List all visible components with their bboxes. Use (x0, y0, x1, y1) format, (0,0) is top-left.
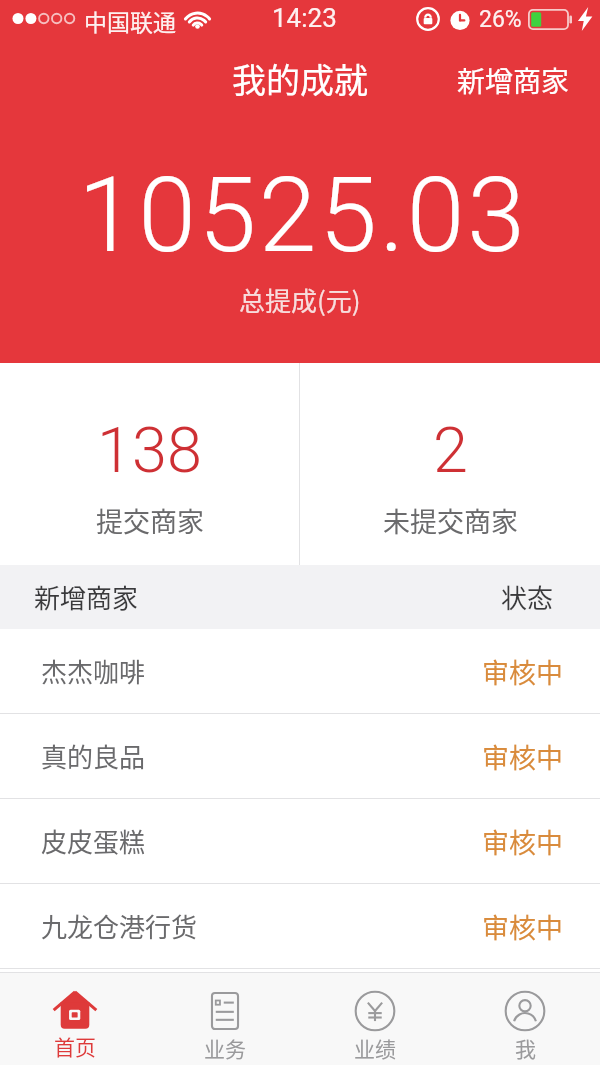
staticText: 提交商家 (96, 501, 204, 540)
staticText: 新增商家 (34, 578, 139, 616)
staticText: 业绩 (354, 1033, 396, 1063)
other: 业务 (204, 990, 246, 1032)
staticText: 10525.03 (78, 155, 528, 277)
button[interactable]: 杰杰咖啡 (0, 629, 600, 713)
staticText: 审核中 (482, 822, 563, 861)
staticText: 14:23 (272, 3, 337, 33)
staticText: 业务 (204, 1033, 246, 1063)
button[interactable]: 2 (300, 363, 600, 565)
staticText: 审核中 (482, 737, 563, 776)
button[interactable]: 我 (450, 973, 600, 1065)
staticText: 审核中 (482, 652, 563, 691)
button[interactable]: 业务 (150, 973, 300, 1065)
other: 业绩 (354, 990, 396, 1032)
staticText: 2 (433, 414, 468, 488)
staticText: 首页 (54, 1031, 96, 1061)
staticText: 未提交商家 (383, 501, 518, 540)
button[interactable]: 九龙仓港行货 (0, 884, 600, 968)
button[interactable]: 新增商家 (453, 54, 574, 107)
staticText: 中国联通 (84, 4, 176, 37)
staticText: 皮皮蛋糕 (41, 822, 146, 860)
staticText: 我 (515, 1033, 536, 1063)
button[interactable]: 业绩 (300, 973, 450, 1065)
staticText: 26% (479, 6, 522, 33)
staticText: 杰杰咖啡 (41, 652, 146, 690)
staticText: 审核中 (482, 907, 563, 946)
staticText: 我的成就 (232, 54, 368, 103)
staticText: 138 (97, 414, 202, 488)
staticText: 真的良品 (41, 737, 146, 775)
other: 首页 (53, 990, 97, 1030)
button[interactable]: 138 (0, 363, 299, 565)
button[interactable]: 首页 (0, 973, 150, 1065)
button[interactable]: 皮皮蛋糕 (0, 799, 600, 883)
button[interactable]: 真的良品 (0, 714, 600, 798)
staticText: 新增商家 (457, 60, 570, 101)
other: 我 (504, 990, 546, 1032)
staticText: 九龙仓港行货 (41, 907, 198, 945)
staticText: 状态 (501, 578, 554, 616)
staticText: 总提成(元) (239, 281, 361, 319)
